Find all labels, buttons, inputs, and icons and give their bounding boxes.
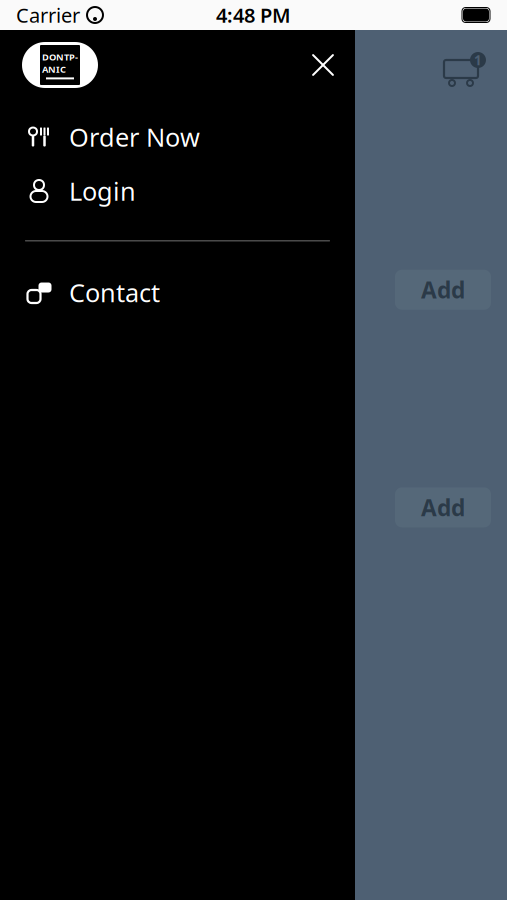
button[interactable]: Contact	[0, 265, 355, 319]
staticText: Brownie	[16, 222, 117, 256]
staticText: Add	[421, 492, 465, 522]
button[interactable]: Login	[0, 164, 355, 218]
staticText: Order Now	[69, 120, 200, 154]
staticText: Carrier	[16, 2, 80, 28]
button[interactable]: Close menu	[301, 43, 345, 87]
button[interactable]: Order Now	[0, 110, 355, 164]
staticText: Login	[69, 174, 136, 208]
staticText: DONTPANIC	[42, 51, 78, 75]
staticText: 4:48 PM	[216, 2, 291, 28]
staticText: Add	[421, 275, 465, 305]
staticText: 1	[474, 51, 482, 69]
staticText: Contact	[69, 276, 160, 309]
